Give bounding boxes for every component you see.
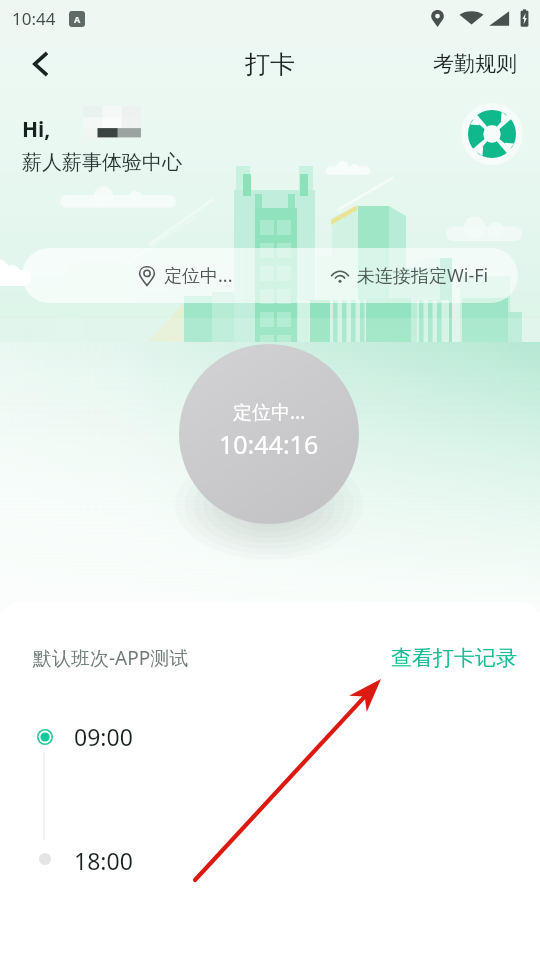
button[interactable]: 查看打卡记录 [391,645,517,671]
button[interactable]: Profile [461,103,523,165]
staticText: 09:00 [74,721,133,752]
button[interactable]: Back [18,42,62,86]
staticText: A [74,13,81,25]
button[interactable]: 定位中... [179,344,359,524]
staticText: 查看打卡记录 [391,645,517,671]
staticText: 定位中... [233,399,306,425]
staticText: 10:44:16 [219,427,319,461]
staticText: Hi, [22,115,51,144]
button[interactable]: 未连接指定Wi-Fi [330,248,518,303]
staticText: 定位中... [164,263,233,288]
staticText: 18:00 [74,845,133,876]
staticText: 10:44 [12,7,56,30]
staticText: 打卡 [245,49,295,80]
button[interactable]: 考勤规则 [433,51,517,77]
staticText: 考勤规则 [433,51,517,77]
staticText: 未连接指定Wi-Fi [357,263,489,288]
staticText: 默认班次-APP测试 [33,645,189,671]
staticText: 薪人薪事体验中心 [22,150,182,175]
button[interactable]: 定位中... [137,248,518,303]
